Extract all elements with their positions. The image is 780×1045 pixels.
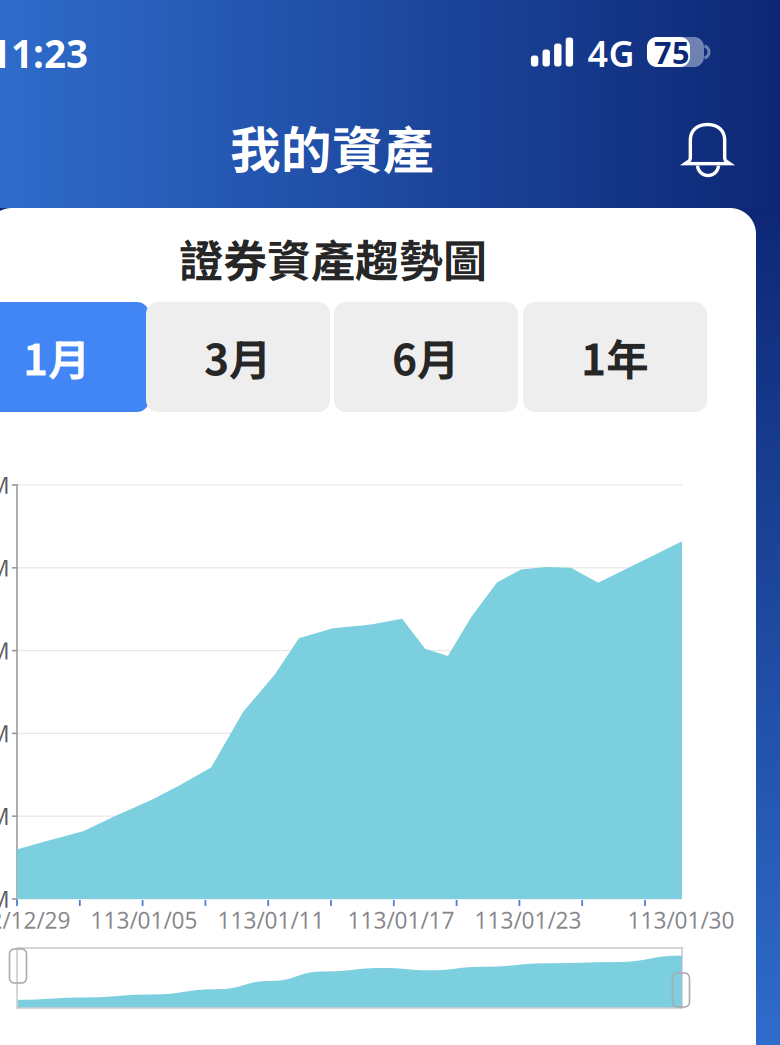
staticText: 6月 [392, 326, 460, 388]
staticText: 113/01/05 [90, 905, 197, 935]
staticText: 113/01/17 [347, 905, 454, 935]
staticText: 113/01/30 [627, 905, 734, 935]
staticText: 我的資產 [230, 110, 434, 184]
staticText: 2/12/29 [0, 905, 70, 935]
button[interactable]: 3月 [146, 302, 330, 412]
button[interactable]: 6月 [334, 302, 518, 412]
staticText: 3.0M [0, 635, 10, 666]
staticText: 2.0M [0, 718, 10, 748]
staticText: 1月 [23, 326, 91, 388]
staticText: 證券資產趨勢圖 [179, 226, 487, 290]
staticText: 11:23 [0, 27, 88, 79]
button[interactable]: 1年 [523, 302, 707, 412]
staticText: 1.0M [0, 801, 10, 831]
staticText: 113/01/11 [217, 905, 324, 935]
button[interactable]: 1月 [0, 302, 149, 412]
staticText: 3月 [204, 326, 272, 388]
staticText: 0.0M [0, 884, 10, 914]
staticText: 4.0M [0, 553, 10, 583]
staticText: 1年 [581, 326, 649, 388]
button[interactable]: Notifications [665, 107, 751, 193]
staticText: 5.0M [0, 470, 10, 500]
staticText: 113/01/23 [474, 905, 581, 935]
staticText: 75 [654, 32, 690, 72]
staticText: 4G [587, 29, 634, 77]
